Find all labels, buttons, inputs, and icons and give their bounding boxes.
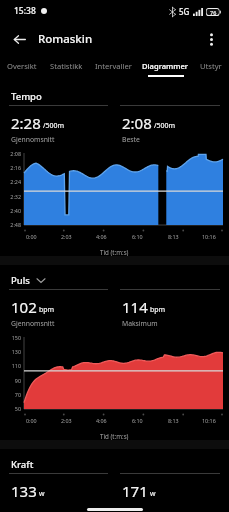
staticText: bpm [39,305,55,315]
staticText: 2:16 [10,164,21,171]
staticText: 10:16 [202,233,216,240]
staticText: 0:00 [26,233,37,240]
staticText: 150 [11,334,21,341]
staticText: 76 [210,9,217,16]
staticText: Gjennomsnitt [11,135,55,144]
staticText: Diagrammer [142,61,189,71]
staticText: 2:40 [10,207,21,214]
staticText: 2:24 [10,178,21,185]
staticText: 110 [11,362,21,369]
staticText: Tempo [11,90,42,103]
staticText: 4:06 [96,233,107,240]
staticText: Beste [122,135,140,144]
staticText: Puls [11,274,30,287]
button[interactable]: Puls [11,274,229,287]
staticText: 8:13 [168,233,179,240]
staticText: 2:32 [10,193,21,200]
staticText: /500m [43,121,65,131]
button[interactable]: Utstyr [192,56,229,81]
staticText: Utstyr [200,61,222,71]
button[interactable]: Back [4,24,34,54]
staticText: 2:08 [122,113,152,133]
staticText: 6:10 [132,417,143,424]
staticText: 90 [14,377,21,384]
staticText: 70 [14,391,21,398]
button[interactable]: Intervaller [89,56,138,81]
staticText: Kraft [11,458,34,471]
staticText: Romaskin [38,31,93,47]
staticText: 4:06 [96,417,107,424]
button[interactable]: More options [197,25,225,53]
staticText: Tid (t:m:s) [100,248,129,256]
staticText: Gjennomsnitt [11,319,55,328]
staticText: 0:00 [26,417,37,424]
staticText: /500m [154,121,176,131]
staticText: 8:13 [168,417,179,424]
staticText: 50 [14,405,21,412]
staticText: bpm [150,305,166,315]
staticText: Statistikk [50,61,83,71]
staticText: 2:28 [11,113,41,133]
staticText: 2:48 [10,221,21,228]
staticText: 102 [11,297,37,317]
staticText: w [39,489,45,499]
staticText: 15:38 [14,5,36,17]
staticText: 133 [11,481,37,501]
staticText: 2:03 [61,417,72,424]
button[interactable]: Oversikt [2,56,42,81]
staticText: 171 [122,481,148,501]
staticText: 6:10 [132,233,143,240]
staticText: 130 [11,348,21,355]
staticText: 2:03 [61,233,72,240]
staticText: 5G [179,6,190,17]
staticText: Maksimum [122,319,158,328]
staticText: 114 [122,297,148,317]
button[interactable]: Diagrammer [138,56,192,81]
staticText: Tid (t:m:s) [100,432,129,440]
staticText: Oversikt [7,61,37,71]
button[interactable]: Statistikk [42,56,89,81]
staticText: Intervaller [95,61,132,71]
staticText: w [150,489,156,499]
staticText: 2:08 [10,150,21,157]
staticText: 10:16 [202,417,216,424]
